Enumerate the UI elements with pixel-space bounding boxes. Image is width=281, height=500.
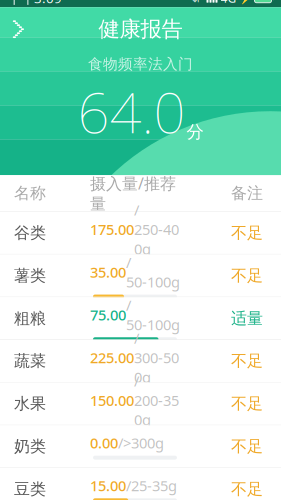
staticText: 分 [186,121,203,143]
staticText: 35.00 [90,262,126,282]
staticText: 备注 [231,183,263,203]
button[interactable]: 水果 [0,383,281,425]
staticText: 奶类 [14,437,46,456]
staticText: 不足 [231,223,263,243]
staticText: 食物频率法入门 [88,55,193,73]
staticText: 适量 [231,308,263,328]
staticText: 不足 [231,437,263,456]
staticText: 摄入量/推荐量 [90,173,176,214]
staticText: /25-35g [126,476,177,495]
button[interactable]: 蔬菜 [0,340,281,383]
staticText: /50-100g [126,295,180,334]
button[interactable]: 薯类 [0,255,281,297]
staticText: 粗粮 [14,308,46,328]
staticText: 下午3:09 [8,0,62,7]
button[interactable]: 粗粮 [0,297,281,340]
staticText: /300-500g [134,328,179,387]
staticText: 150.00 [90,390,134,410]
staticText: 不足 [231,479,263,499]
staticText: 225.00 [90,348,134,367]
staticText: /250-400g [134,200,179,259]
staticText: /200-350g [134,371,179,429]
button[interactable]: 返回 [0,12,36,46]
staticText: 不足 [231,351,263,371]
staticText: 0.00 [90,433,118,453]
staticText: 蔬菜 [14,351,46,371]
staticText: 不足 [231,266,263,285]
staticText: />300g [118,433,164,453]
staticText: 75.00 [90,305,126,325]
staticText: 名称 [14,183,46,203]
staticText: 175.00 [90,220,134,239]
staticText: 不足 [231,394,263,414]
staticText: 4G [220,0,236,6]
button[interactable]: 奶类 [0,425,281,468]
button[interactable]: 豆类 [0,468,281,500]
staticText: /50-100g [126,253,180,292]
staticText: ⇵ [191,0,201,5]
staticText: ⚡ [238,0,251,4]
staticText: 健康报告 [98,16,182,42]
staticText: 64.0 [77,74,185,149]
button[interactable]: 谷类 [0,212,281,255]
staticText: 15.00 [90,476,126,495]
staticText: 豆类 [14,479,46,499]
staticText: 水果 [14,394,46,414]
staticText: 薯类 [14,266,46,285]
staticText: 谷类 [14,223,46,243]
